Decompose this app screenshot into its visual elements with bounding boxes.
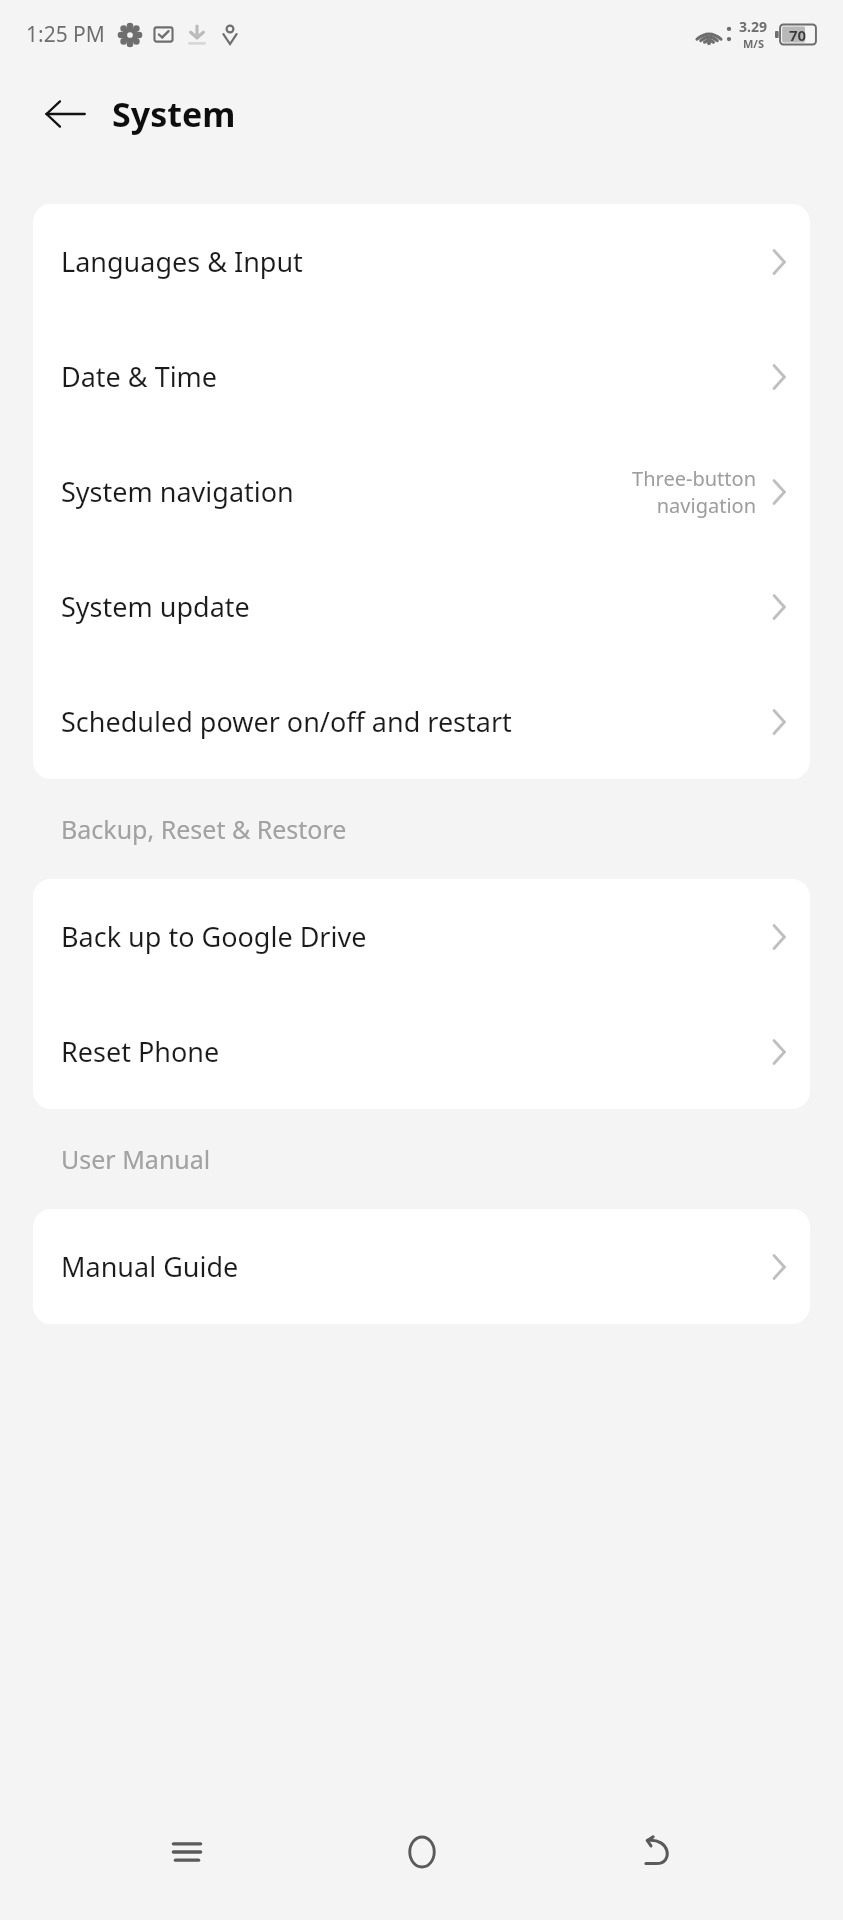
staticText: System — [112, 91, 236, 137]
staticText: 3.29 — [739, 17, 767, 36]
button[interactable]: Manual Guide — [33, 1209, 810, 1324]
button[interactable]: Home — [374, 1804, 470, 1900]
staticText: Manual Guide — [61, 1248, 239, 1285]
staticText: M/S — [743, 36, 764, 51]
button[interactable]: Languages & Input — [33, 204, 810, 319]
staticText: Three-button navigation — [632, 465, 756, 519]
button[interactable]: Recent apps — [139, 1804, 235, 1900]
staticText: Languages & Input — [61, 243, 303, 280]
staticText: 1:25 PM — [26, 20, 105, 49]
button[interactable]: Back up to Google Drive — [33, 879, 810, 994]
button[interactable]: Date & Time — [33, 319, 810, 434]
button[interactable]: System update — [33, 549, 810, 664]
button[interactable]: Scheduled power on/off and restart — [33, 664, 810, 779]
staticText: Reset Phone — [61, 1033, 220, 1070]
staticText: System navigation — [61, 473, 294, 510]
button[interactable]: System navigation — [33, 434, 810, 549]
staticText: User Manual — [61, 1142, 211, 1176]
staticText: Scheduled power on/off and restart — [61, 703, 512, 740]
staticText: 70 — [789, 25, 807, 45]
staticText: Back up to Google Drive — [61, 918, 367, 955]
staticText: System update — [61, 588, 250, 625]
staticText: Backup, Reset & Restore — [61, 812, 347, 846]
button[interactable]: Reset Phone — [33, 994, 810, 1109]
staticText: Date & Time — [61, 358, 218, 395]
button[interactable]: Back — [28, 77, 102, 151]
button[interactable]: Back — [608, 1804, 704, 1900]
